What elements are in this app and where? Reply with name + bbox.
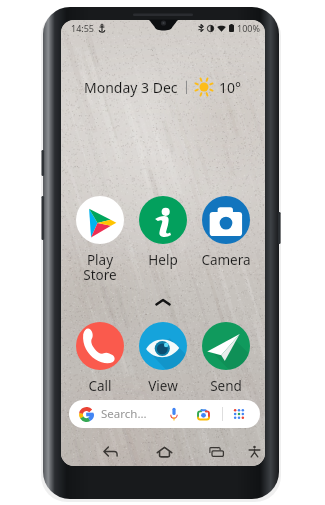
- button[interactable]: Search...: [69, 400, 260, 428]
- staticText: 14:55: [71, 22, 95, 34]
- staticText: Play Store: [83, 251, 117, 284]
- staticText: Monday 3 Dec: [84, 78, 178, 97]
- button[interactable]: Camera: [196, 196, 256, 269]
- button[interactable]: Play Store: [70, 196, 130, 284]
- button[interactable]: View: [133, 322, 193, 395]
- staticText: Call: [88, 377, 112, 395]
- button[interactable]: Show more apps: [153, 296, 173, 308]
- button[interactable]: Accessibility: [241, 437, 265, 465]
- button[interactable]: Back: [97, 437, 123, 465]
- button[interactable]: Recent apps: [203, 437, 229, 465]
- staticText: Send: [210, 377, 242, 395]
- button[interactable]: Send: [196, 322, 256, 395]
- button[interactable]: Call: [70, 322, 130, 395]
- staticText: Search...: [101, 406, 147, 422]
- staticText: 10°: [219, 78, 242, 97]
- button[interactable]: Help: [133, 196, 193, 269]
- staticText: 100%: [237, 22, 260, 34]
- staticText: Help: [148, 251, 178, 269]
- staticText: View: [148, 377, 178, 395]
- staticText: Camera: [201, 251, 251, 269]
- button[interactable]: Home: [151, 437, 177, 465]
